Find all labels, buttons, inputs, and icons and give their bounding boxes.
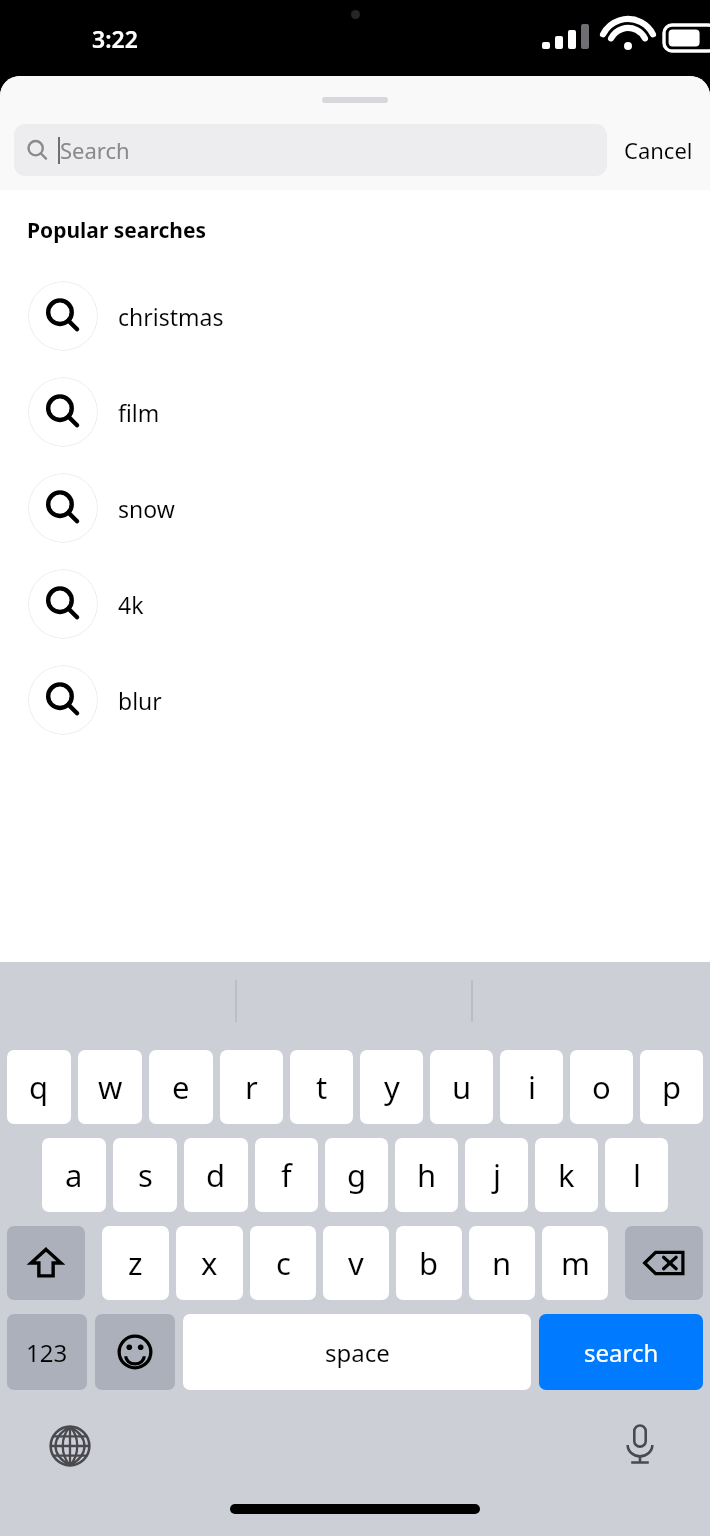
button[interactable]: Dictation — [614, 1418, 666, 1470]
button[interactable]: Emoji — [95, 1314, 175, 1390]
staticText: k — [558, 1154, 575, 1196]
staticText: s — [138, 1154, 153, 1196]
staticText: p — [662, 1066, 682, 1108]
staticText: c — [276, 1242, 291, 1284]
staticText: l — [633, 1154, 641, 1196]
staticText: n — [492, 1242, 512, 1284]
button[interactable]: m — [542, 1226, 608, 1300]
staticText: 3:22 — [92, 23, 138, 54]
button[interactable]: Shift — [7, 1226, 85, 1300]
button[interactable]: x — [176, 1226, 243, 1300]
staticText: blur — [118, 685, 162, 716]
button[interactable]: o — [570, 1050, 633, 1124]
staticText: 4k — [118, 589, 144, 620]
button[interactable]: search — [539, 1314, 703, 1390]
staticText: y — [384, 1066, 400, 1108]
button[interactable]: e — [149, 1050, 213, 1124]
staticText: j — [493, 1154, 501, 1196]
staticText: a — [65, 1154, 83, 1196]
button[interactable]: i — [500, 1050, 563, 1124]
staticText: snow — [118, 493, 175, 524]
button[interactable]: christmas — [0, 268, 710, 364]
button[interactable]: snow — [0, 460, 710, 556]
button[interactable]: g — [325, 1138, 388, 1212]
button[interactable]: 123 — [7, 1314, 87, 1390]
staticText: g — [347, 1154, 367, 1196]
staticText: t — [316, 1066, 328, 1108]
staticText: e — [172, 1066, 190, 1108]
button[interactable]: d — [184, 1138, 248, 1212]
staticText: m — [561, 1242, 590, 1284]
staticText: u — [452, 1066, 472, 1108]
staticText: Search — [60, 135, 130, 165]
button[interactable]: Cancel — [607, 135, 710, 165]
button[interactable]: Search — [14, 124, 607, 176]
staticText: Cancel — [624, 135, 693, 165]
button[interactable]: l — [605, 1138, 668, 1212]
button[interactable]: Backspace — [625, 1226, 703, 1300]
staticText: search — [584, 1336, 659, 1369]
staticText: f — [281, 1154, 292, 1196]
button[interactable]: t — [290, 1050, 353, 1124]
staticText: i — [528, 1066, 536, 1108]
staticText: v — [348, 1242, 364, 1284]
button[interactable]: r — [220, 1050, 283, 1124]
button[interactable]: v — [323, 1226, 389, 1300]
staticText: q — [29, 1066, 49, 1108]
button[interactable]: space — [183, 1314, 531, 1390]
staticText: christmas — [118, 301, 224, 332]
button[interactable]: Switch keyboard — [44, 1420, 96, 1472]
button[interactable]: n — [469, 1226, 535, 1300]
button[interactable]: b — [396, 1226, 462, 1300]
button[interactable]: y — [360, 1050, 423, 1124]
staticText: space — [325, 1336, 390, 1369]
button[interactable]: h — [395, 1138, 458, 1212]
staticText: h — [417, 1154, 437, 1196]
button[interactable]: p — [640, 1050, 703, 1124]
button[interactable]: 4k — [0, 556, 710, 652]
button[interactable]: k — [535, 1138, 598, 1212]
button[interactable]: w — [78, 1050, 142, 1124]
button[interactable]: s — [113, 1138, 177, 1212]
button[interactable]: a — [42, 1138, 106, 1212]
button[interactable]: f — [255, 1138, 318, 1212]
staticText: 123 — [26, 1336, 68, 1369]
button[interactable]: film — [0, 364, 710, 460]
button[interactable]: z — [102, 1226, 169, 1300]
button[interactable]: c — [250, 1226, 316, 1300]
staticText: o — [592, 1066, 611, 1108]
button[interactable]: blur — [0, 652, 710, 748]
staticText: b — [419, 1242, 439, 1284]
button[interactable]: u — [430, 1050, 493, 1124]
staticText: film — [118, 397, 160, 428]
staticText: z — [128, 1242, 143, 1284]
button[interactable]: j — [465, 1138, 528, 1212]
staticText: r — [245, 1066, 258, 1108]
button[interactable]: q — [7, 1050, 71, 1124]
staticText: d — [206, 1154, 226, 1196]
staticText: Popular searches — [27, 216, 206, 245]
staticText: w — [98, 1066, 123, 1108]
staticText: x — [201, 1242, 218, 1284]
